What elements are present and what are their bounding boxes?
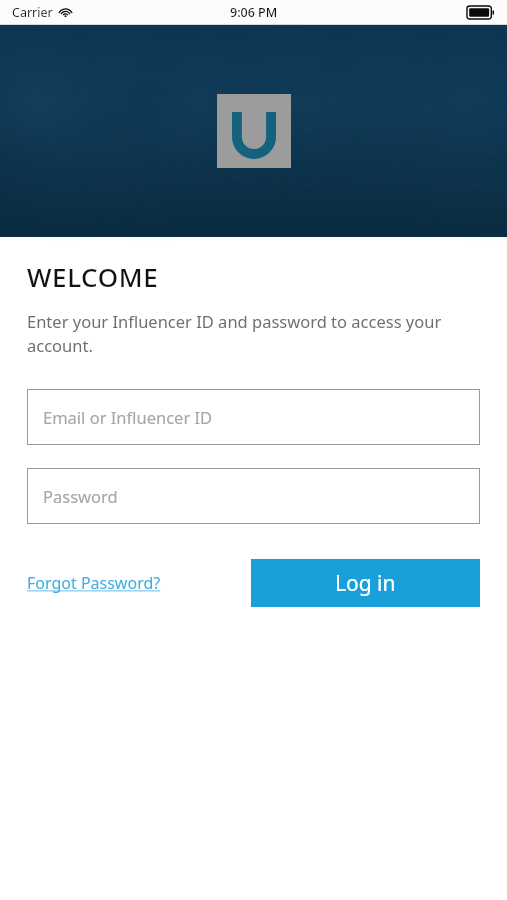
button[interactable]: Log in bbox=[251, 559, 480, 607]
button[interactable]: Email or Influencer ID bbox=[27, 389, 480, 445]
staticText: Carrier bbox=[12, 4, 53, 21]
button[interactable]: Forgot Password? bbox=[27, 566, 161, 600]
staticText: Enter your Influencer ID and password to… bbox=[27, 310, 480, 357]
staticText: Password bbox=[43, 485, 118, 507]
staticText: WELCOME bbox=[27, 259, 159, 294]
staticText: Email or Influencer ID bbox=[43, 406, 213, 428]
staticText: Forgot Password? bbox=[27, 572, 161, 594]
staticText: 9:06 PM bbox=[230, 4, 278, 21]
button[interactable]: Password bbox=[27, 468, 480, 524]
staticText: Log in bbox=[335, 569, 396, 598]
